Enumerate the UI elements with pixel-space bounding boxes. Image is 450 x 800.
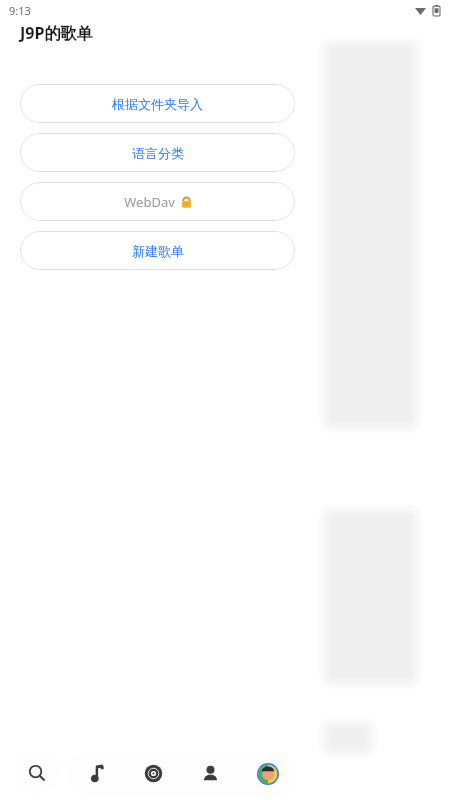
button[interactable]: Account <box>239 751 296 796</box>
button[interactable]: 语言分类 <box>20 133 295 172</box>
staticText: 根据文件夹导入 <box>112 96 203 112</box>
button[interactable]: 新建歌单 <box>20 231 295 270</box>
button[interactable]: WebDav <box>20 182 295 221</box>
staticText: 新建歌单 <box>132 243 184 259</box>
button[interactable]: 根据文件夹导入 <box>20 84 295 123</box>
button[interactable]: Profile <box>182 751 239 796</box>
staticText: 语言分类 <box>132 145 184 161</box>
staticText: 9:13 <box>9 3 31 18</box>
button[interactable]: Albums <box>125 751 182 796</box>
staticText: J9P的歌单 <box>20 22 93 44</box>
button[interactable]: Music <box>68 751 125 796</box>
button[interactable]: Search <box>15 751 59 795</box>
staticText: WebDav <box>124 193 175 211</box>
